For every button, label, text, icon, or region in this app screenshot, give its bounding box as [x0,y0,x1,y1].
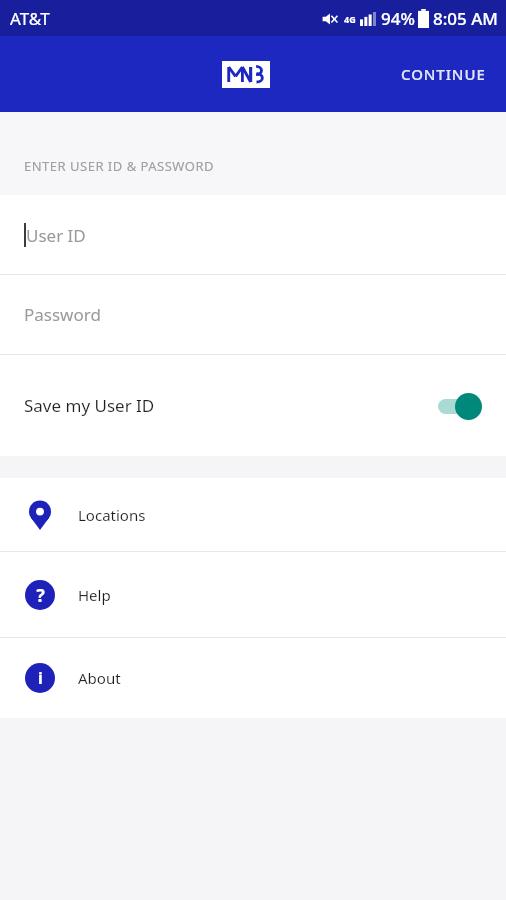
button[interactable]: CONTINUE [381,36,506,112]
button[interactable]: MNB logo [222,61,270,88]
staticText: 8:05 AM [433,7,498,30]
staticText: About [78,668,121,688]
staticText: Save my User ID [24,394,155,417]
button[interactable]: Locations [0,478,506,551]
staticText: Password [24,303,101,326]
button[interactable]: Save my User ID [0,355,506,456]
staticText: AT&T [10,7,50,30]
staticText: CONTINUE [401,64,486,84]
button[interactable]: User ID [0,195,506,274]
staticText: ? [36,583,45,608]
staticText: Locations [78,505,146,525]
staticText: 94% [381,7,415,30]
staticText: ENTER USER ID & PASSWORD [24,157,215,175]
other: Save my User ID toggle [430,391,482,421]
staticText: Help [78,585,111,605]
button[interactable]: i [0,638,506,718]
staticText: i [38,667,43,689]
staticText: User ID [26,224,86,247]
button[interactable]: ? [0,552,506,637]
button[interactable]: Password [0,275,506,354]
staticText: 4G [344,13,356,25]
